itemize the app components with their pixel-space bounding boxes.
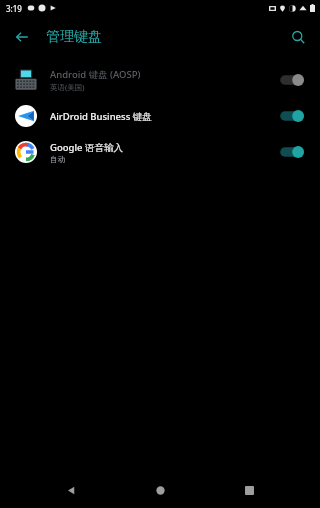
staticText: Google 语音输入 bbox=[50, 141, 123, 154]
button[interactable]: Toggle keyboard bbox=[276, 107, 306, 125]
button[interactable]: Back bbox=[6, 21, 38, 53]
staticText: 管理键盘 bbox=[46, 28, 102, 46]
button[interactable]: Toggle keyboard bbox=[276, 71, 306, 89]
staticText: AirDroid Business 键盘 bbox=[50, 110, 152, 123]
button[interactable]: Android 键盘 (AOSP) bbox=[0, 62, 320, 98]
staticText: Android 键盘 (AOSP) bbox=[50, 68, 141, 81]
staticText: 自动 bbox=[50, 155, 65, 164]
button[interactable]: Back bbox=[53, 472, 89, 508]
button[interactable]: Toggle keyboard bbox=[276, 143, 306, 161]
staticText: 英语(美国) bbox=[50, 82, 85, 92]
button[interactable]: Home bbox=[142, 472, 178, 508]
button[interactable]: Search bbox=[282, 21, 314, 53]
button[interactable]: AirDroid Business 键盘 bbox=[0, 98, 320, 134]
button[interactable]: Google 语音输入 bbox=[0, 134, 320, 170]
staticText: 3:19 bbox=[6, 3, 22, 14]
button[interactable]: Recents bbox=[231, 472, 267, 508]
